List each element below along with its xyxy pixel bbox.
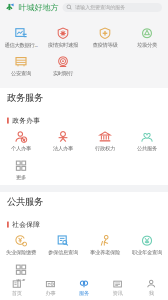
button[interactable]: 请输入您要查询的服务: [62, 3, 162, 12]
button[interactable]: 法人办事: [42, 131, 84, 152]
button[interactable]: 垃圾分类: [126, 27, 168, 48]
staticText: 办事: [45, 290, 55, 297]
button[interactable]: 行政权力: [84, 131, 126, 152]
staticText: 公安查询: [11, 70, 31, 77]
staticText: 通信大数据行...: [4, 41, 37, 49]
staticText: 法人办事: [53, 145, 73, 152]
button[interactable]: 首页: [0, 279, 34, 297]
button[interactable]: 失业保险缴费: [0, 235, 42, 256]
staticText: 更多: [16, 278, 26, 285]
button[interactable]: 公安查询: [0, 56, 42, 77]
staticText: 实时限行: [53, 70, 73, 77]
button[interactable]: 通信大数据行...: [0, 27, 42, 49]
staticText: 更多: [16, 174, 26, 181]
staticText: 公共服务: [137, 145, 157, 152]
button[interactable]: 参保信息查询: [42, 235, 84, 256]
button[interactable]: 个人办事: [0, 131, 42, 152]
button[interactable]: 我: [134, 279, 168, 297]
staticText: 查疫情等级: [92, 42, 117, 48]
staticText: 叶城好地方: [18, 3, 58, 12]
button[interactable]: 疫情实时速报: [42, 27, 84, 48]
staticText: 职业年金查询: [132, 249, 162, 256]
staticText: 行政权力: [95, 145, 115, 152]
button[interactable]: 实时限行: [42, 56, 84, 77]
staticText: 垃圾分类: [137, 42, 157, 48]
staticText: 资讯: [113, 290, 123, 297]
button[interactable]: 事业养老保险: [84, 235, 126, 256]
button[interactable]: 资讯: [101, 279, 134, 297]
staticText: 公共服务: [7, 196, 43, 207]
staticText: 参保信息查询: [48, 249, 78, 256]
staticText: 失业保险缴费: [6, 249, 36, 256]
staticText: 服务: [79, 290, 89, 297]
staticText: 疫情实时速报: [48, 42, 78, 48]
staticText: 政务办事: [12, 116, 40, 125]
button[interactable]: 职业年金查询: [126, 235, 168, 256]
staticText: 个人办事: [11, 145, 31, 152]
staticText: 请输入您要查询的服务: [75, 4, 125, 11]
staticText: 政务服务: [7, 92, 43, 103]
button[interactable]: 办事: [34, 279, 67, 297]
button[interactable]: 服务: [67, 279, 101, 297]
staticText: 事业养老保险: [90, 249, 120, 256]
button[interactable]: 更多: [0, 264, 42, 285]
button[interactable]: 公共服务: [126, 131, 168, 152]
button[interactable]: 查疫情等级: [84, 27, 126, 48]
staticText: 首页: [12, 290, 22, 297]
staticText: 我: [149, 290, 154, 297]
button[interactable]: 更多: [0, 160, 42, 181]
staticText: 社会保障: [12, 220, 40, 229]
